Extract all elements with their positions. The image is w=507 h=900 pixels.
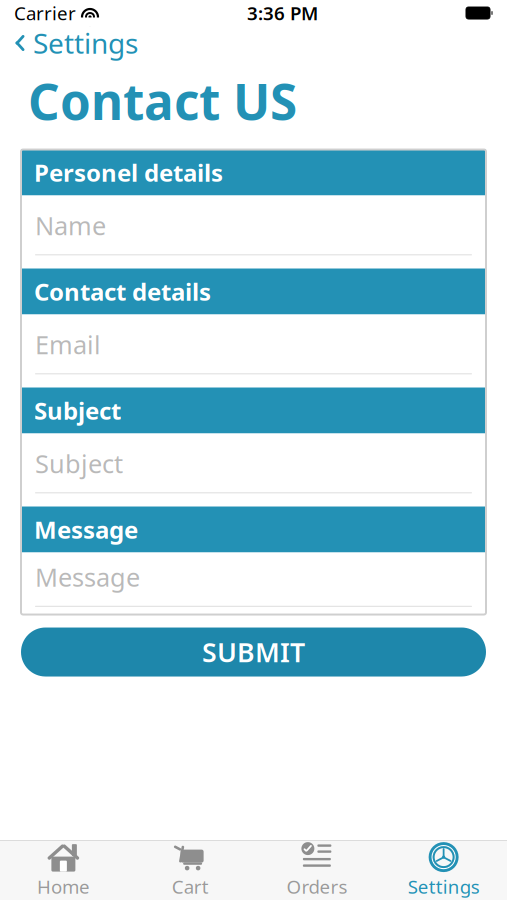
staticText: Settings (33, 24, 138, 62)
staticText: Personel details (34, 157, 223, 188)
staticText: Cart (172, 874, 209, 899)
button[interactable]: Orders (253, 836, 380, 900)
staticText: Home (37, 874, 90, 899)
button[interactable]: Name (21, 195, 486, 268)
staticText: Orders (286, 874, 347, 899)
button[interactable]: Settings (380, 836, 507, 900)
button[interactable]: Cart (127, 836, 254, 900)
button[interactable]: Email (21, 314, 486, 387)
staticText: Name (35, 209, 106, 242)
staticText: Contact details (34, 276, 211, 307)
staticText: Message (34, 514, 138, 545)
button[interactable]: Settings (0, 18, 138, 68)
staticText: Settings (408, 874, 480, 899)
staticText: Subject (35, 447, 123, 480)
staticText: Carrier (14, 1, 76, 25)
staticText: SUBMIT (202, 634, 305, 670)
button[interactable]: Subject (21, 433, 486, 506)
button[interactable]: Message (21, 552, 486, 614)
button[interactable]: SUBMIT (21, 627, 486, 676)
staticText: 3:36 PM (247, 1, 318, 25)
staticText: Subject (34, 395, 121, 426)
button[interactable]: Home (0, 836, 127, 900)
staticText: Contact US (28, 68, 297, 133)
staticText: Message (35, 560, 140, 594)
staticText: Email (35, 328, 101, 361)
